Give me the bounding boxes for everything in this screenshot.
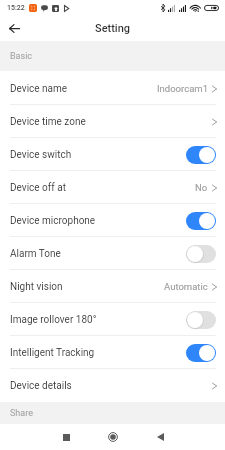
staticText: Alarm Tone xyxy=(10,248,61,260)
button[interactable]: Alarm Tone xyxy=(0,237,225,270)
button[interactable]: Home xyxy=(96,424,130,450)
button[interactable]: Image rollover 180° xyxy=(0,303,225,336)
staticText: 15:22 xyxy=(7,4,25,12)
button[interactable]: Device off at xyxy=(0,171,225,204)
staticText: No xyxy=(195,182,208,193)
button[interactable]: Back xyxy=(0,16,28,41)
button[interactable]: Device microphone xyxy=(0,204,225,237)
staticText: Device off at xyxy=(10,182,66,194)
staticText: Automatic xyxy=(164,281,208,292)
staticText: Share xyxy=(10,408,33,419)
staticText: Image rollover 180° xyxy=(10,314,97,326)
staticText: Device details xyxy=(10,380,72,392)
staticText: Device name xyxy=(10,83,68,95)
button[interactable]: Intelligent Tracking xyxy=(0,336,225,369)
staticText: Device switch xyxy=(10,149,72,161)
staticText: Basic xyxy=(10,51,33,62)
button[interactable]: Device details xyxy=(0,369,225,402)
staticText: Intelligent Tracking xyxy=(10,347,95,359)
button[interactable]: Device name xyxy=(0,72,225,105)
button[interactable]: Back xyxy=(143,424,177,450)
staticText: Indoorcam1 xyxy=(157,83,208,94)
staticText: Device time zone xyxy=(10,116,86,128)
staticText: Device microphone xyxy=(10,215,96,227)
button[interactable]: Recents xyxy=(49,424,83,450)
staticText: Night vision xyxy=(10,281,63,293)
button[interactable]: Device switch xyxy=(0,138,225,171)
staticText: Setting xyxy=(95,22,131,35)
button[interactable]: Night vision xyxy=(0,270,225,303)
button[interactable]: Device time zone xyxy=(0,105,225,138)
